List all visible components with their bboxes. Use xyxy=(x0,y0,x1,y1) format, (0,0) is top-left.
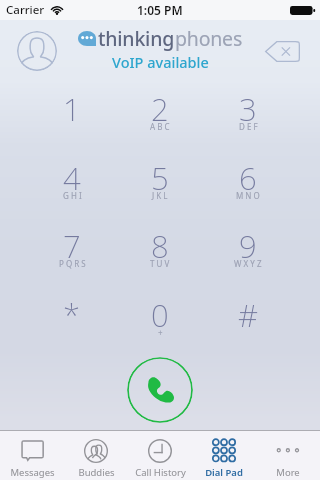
button[interactable]: Delete xyxy=(261,37,305,66)
button[interactable]: 8 xyxy=(117,214,203,280)
staticText: # xyxy=(238,294,259,336)
staticText: DEF xyxy=(239,121,260,132)
button[interactable]: Call History xyxy=(128,431,192,480)
staticText: Buddies xyxy=(78,466,115,479)
staticText: 6 xyxy=(239,157,257,199)
button[interactable]: 3 xyxy=(205,77,291,143)
staticText: Carrier xyxy=(6,2,45,18)
staticText: 2 xyxy=(151,88,169,130)
staticText: 3 xyxy=(239,88,257,130)
button[interactable]: 4 xyxy=(29,146,115,212)
staticText: 0 xyxy=(151,294,169,336)
button[interactable]: Messages xyxy=(0,431,64,480)
staticText: phones xyxy=(175,25,243,52)
staticText: ABC xyxy=(150,121,172,132)
staticText: * xyxy=(63,294,81,336)
staticText: Dial Pad xyxy=(205,466,243,479)
button[interactable]: 5 xyxy=(117,146,203,212)
staticText: MNO xyxy=(236,190,262,201)
staticText: 7 xyxy=(63,225,81,267)
staticText: TUV xyxy=(150,258,172,269)
button[interactable]: More xyxy=(256,431,320,480)
staticText: WXYZ xyxy=(234,258,264,269)
button[interactable]: * xyxy=(29,283,115,349)
button[interactable]: Contacts xyxy=(17,31,57,71)
staticText: 1 xyxy=(63,88,81,130)
button[interactable]: 9 xyxy=(205,214,291,280)
button[interactable]: Call xyxy=(127,357,193,423)
staticText: Call History xyxy=(135,466,186,479)
staticText: GHI xyxy=(63,190,84,201)
staticText: 8 xyxy=(151,225,169,267)
button[interactable]: 2 xyxy=(117,77,203,143)
button[interactable]: Dial Pad xyxy=(192,431,256,480)
staticText: 1:05 PM xyxy=(137,2,183,18)
staticText: PQRS xyxy=(59,258,88,269)
staticText: + xyxy=(158,327,165,338)
button[interactable]: 1 xyxy=(29,77,115,143)
staticText: JKL xyxy=(152,190,170,201)
button[interactable]: 6 xyxy=(205,146,291,212)
staticText: Messages xyxy=(10,466,55,479)
button[interactable]: 7 xyxy=(29,214,115,280)
staticText: 9 xyxy=(239,225,257,267)
staticText: More xyxy=(276,466,300,479)
staticText: thinking xyxy=(98,25,175,52)
button[interactable]: 0 xyxy=(117,283,203,349)
staticText: VoIP available xyxy=(112,52,209,72)
button[interactable]: Buddies xyxy=(64,431,128,480)
staticText: 4 xyxy=(63,157,81,199)
button[interactable]: # xyxy=(205,283,291,349)
staticText: 5 xyxy=(151,157,169,199)
